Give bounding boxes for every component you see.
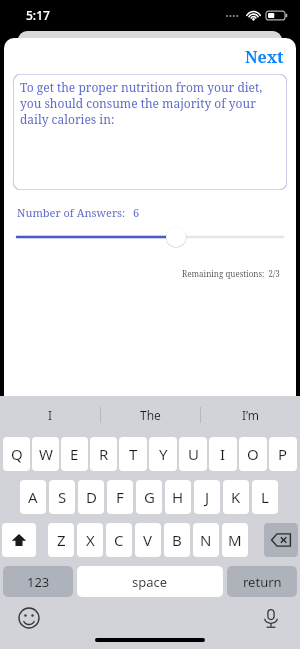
staticText: J [205,487,210,507]
staticText: 123 [27,573,50,591]
button[interactable]: W [32,437,59,471]
button[interactable]: return [227,566,297,597]
button[interactable]: L [252,480,278,514]
staticText: M [228,530,242,550]
button[interactable]: P [269,437,297,471]
button[interactable]: To get the proper nutrition from your di… [13,74,287,190]
staticText: X [86,530,95,550]
staticText: S [58,487,67,507]
staticText: E [70,444,79,464]
button[interactable]: F [107,480,133,514]
button[interactable]: Next [239,42,290,72]
button[interactable]: A [20,480,46,514]
button[interactable]: H [165,480,191,514]
staticText: The [140,407,161,423]
button[interactable]: K [223,480,249,514]
staticText: U [188,444,199,464]
button[interactable]: Z [48,523,74,557]
staticText: 5:17 [26,7,50,23]
button[interactable]: X [77,523,103,557]
staticText: A [28,487,38,507]
button[interactable]: The [101,396,200,433]
button[interactable]: D [78,480,104,514]
button[interactable] [13,226,287,248]
staticText: C [114,530,124,550]
button[interactable]: I’m [201,396,300,433]
button[interactable]: Shift [2,523,36,557]
staticText: K [231,487,241,507]
staticText: P [278,444,288,464]
button[interactable]: Emoji [18,607,40,629]
button[interactable]: J [194,480,220,514]
staticText: Number of Answers: [17,205,126,220]
button[interactable]: Dictation [260,607,282,629]
staticText: L [261,487,269,507]
staticText: To get the proper nutrition from your di… [20,79,279,127]
staticText: space [132,573,168,591]
staticText: Remaining questions: 2/3 [182,268,280,279]
staticText: V [143,530,153,550]
button[interactable]: E [61,437,88,471]
button[interactable]: 123 [3,566,73,597]
staticText: B [172,530,182,550]
staticText: I [48,407,53,423]
staticText: return [243,573,282,591]
button[interactable]: G [136,480,162,514]
staticText: F [116,487,124,507]
button[interactable]: M [222,523,248,557]
staticText: O [247,444,259,464]
button[interactable]: I [209,437,237,471]
staticText: D [86,487,97,507]
button[interactable]: T [119,437,147,471]
button[interactable]: S [49,480,75,514]
button[interactable]: U [179,437,207,471]
staticText: H [172,487,184,507]
button[interactable]: space [77,566,223,597]
staticText: I’m [242,407,260,423]
button[interactable]: I [0,396,100,433]
button[interactable]: B [164,523,190,557]
staticText: Q [11,444,23,464]
staticText: T [129,444,138,464]
staticText: R [99,444,109,464]
button[interactable]: V [135,523,161,557]
staticText: N [200,530,212,550]
staticText: 6 [133,205,140,220]
button[interactable]: Y [149,437,177,471]
button[interactable]: Backspace [264,523,298,557]
staticText: Next [245,46,284,68]
staticText: Y [159,444,168,464]
button[interactable]: C [106,523,132,557]
staticText: G [144,487,155,507]
button[interactable]: O [239,437,267,471]
staticText: Z [57,530,66,550]
button[interactable]: Q [3,437,30,471]
button[interactable]: R [90,437,117,471]
staticText: W [39,444,53,464]
button[interactable]: N [193,523,219,557]
staticText: I [220,444,226,464]
